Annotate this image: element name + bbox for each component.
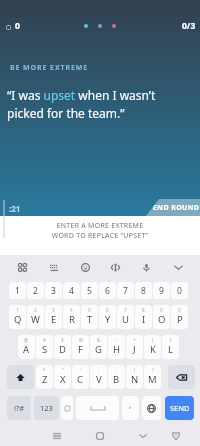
button[interactable]: 0: [171, 305, 188, 329]
staticText: 3: [51, 285, 56, 297]
staticText: 5: [88, 307, 91, 313]
staticText: ?: [152, 367, 154, 373]
button[interactable]: ?: [144, 365, 161, 389]
button[interactable]: 123: [34, 396, 59, 420]
staticText: ,: [129, 399, 132, 411]
staticText: 8: [141, 285, 146, 297]
button[interactable]: Collapse: [167, 256, 189, 278]
button[interactable]: Shift: [7, 365, 34, 389]
button[interactable]: 1: [9, 305, 26, 329]
button[interactable]: 0: [171, 282, 188, 299]
button[interactable]: 4: [63, 282, 80, 299]
button[interactable]: $: [54, 335, 71, 359]
staticText: ': [80, 367, 82, 373]
button[interactable]: :: [90, 365, 107, 389]
button[interactable]: ': [72, 365, 89, 389]
button[interactable]: @: [18, 335, 35, 359]
button[interactable]: Switch keyboard: [165, 425, 186, 446]
staticText: 2: [34, 307, 37, 313]
staticText: #: [43, 337, 46, 343]
staticText: ): [170, 337, 172, 343]
staticText: @: [24, 337, 29, 343]
staticText: ;: [116, 367, 118, 373]
button[interactable]: Space: [76, 396, 119, 420]
button[interactable]: +: [126, 335, 143, 359]
staticText: *: [43, 367, 46, 373]
staticText: W: [31, 313, 40, 326]
button[interactable]: END ROUND: [146, 199, 200, 216]
staticText: A: [23, 343, 30, 356]
button[interactable]: 6: [99, 305, 116, 329]
button[interactable]: Voice input: [135, 256, 157, 278]
staticText: 6: [105, 285, 110, 297]
staticText: U: [122, 313, 129, 326]
staticText: END ROUND: [153, 203, 200, 213]
staticText: 3: [52, 307, 55, 313]
staticText: +: [133, 337, 136, 343]
button[interactable]: Apps: [11, 256, 33, 278]
staticText: S: [42, 343, 48, 356]
button[interactable]: !?#: [7, 396, 31, 420]
staticText: 7: [123, 285, 128, 297]
button[interactable]: 2: [27, 305, 44, 329]
button[interactable]: &: [90, 335, 107, 359]
button[interactable]: 3: [45, 305, 62, 329]
staticText: N: [131, 373, 139, 386]
staticText: H: [113, 343, 121, 356]
button[interactable]: 9: [153, 282, 170, 299]
staticText: R: [69, 313, 75, 326]
button[interactable]: !: [126, 365, 143, 389]
staticText: 1: [15, 285, 20, 297]
staticText: V: [96, 373, 102, 386]
button[interactable]: #: [36, 335, 53, 359]
staticText: E: [51, 313, 57, 326]
button[interactable]: 5: [81, 305, 98, 329]
button[interactable]: ": [54, 365, 71, 389]
button[interactable]: 8: [135, 305, 152, 329]
staticText: 0: [15, 20, 20, 32]
staticText: C: [77, 373, 84, 386]
button[interactable]: 0: [6, 20, 20, 32]
button[interactable]: ,: [122, 396, 139, 420]
staticText: 9: [159, 285, 164, 297]
staticText: 0: [178, 307, 181, 313]
button[interactable]: 3: [45, 282, 62, 299]
staticText: :21: [9, 203, 21, 214]
button[interactable]: SEND: [165, 396, 194, 420]
button[interactable]: -: [108, 335, 125, 359]
button[interactable]: Change language: [142, 396, 161, 420]
staticText: SEND: [170, 403, 190, 413]
staticText: 8: [142, 307, 145, 313]
button[interactable]: %: [72, 335, 89, 359]
button[interactable]: Emoji: [74, 256, 96, 278]
button[interactable]: 7: [117, 305, 134, 329]
staticText: (: [152, 337, 154, 343]
button[interactable]: Keyboard settings: [43, 256, 65, 278]
button[interactable]: 6: [99, 282, 116, 299]
button[interactable]: 4: [63, 305, 80, 329]
button[interactable]: ;: [108, 365, 125, 389]
staticText: %: [79, 337, 83, 343]
button[interactable]: ): [162, 335, 179, 359]
button[interactable]: Recent apps: [46, 425, 67, 446]
button[interactable]: 1: [9, 282, 26, 299]
button[interactable]: Home: [89, 425, 110, 446]
button[interactable]: 7: [117, 282, 134, 299]
button[interactable]: 5: [81, 282, 98, 299]
staticText: B: [113, 373, 120, 386]
button[interactable]: 9: [153, 305, 170, 329]
button[interactable]: Text editing: [104, 256, 126, 278]
button[interactable]: (: [144, 335, 161, 359]
staticText: ENTER A MORE EXTREME WORD TO REPLACE “UP…: [0, 221, 200, 241]
staticText: 9: [160, 307, 163, 313]
button[interactable]: 8: [135, 282, 152, 299]
button[interactable]: Backspace: [168, 365, 195, 389]
button[interactable]: 2: [27, 282, 44, 299]
button[interactable]: *: [36, 365, 53, 389]
button[interactable]: Back: [132, 425, 153, 446]
staticText: O: [158, 313, 166, 326]
staticText: &: [97, 337, 101, 343]
button[interactable]: Sticker: [61, 396, 73, 420]
staticText: T: [87, 313, 93, 326]
staticText: I: [142, 313, 146, 326]
